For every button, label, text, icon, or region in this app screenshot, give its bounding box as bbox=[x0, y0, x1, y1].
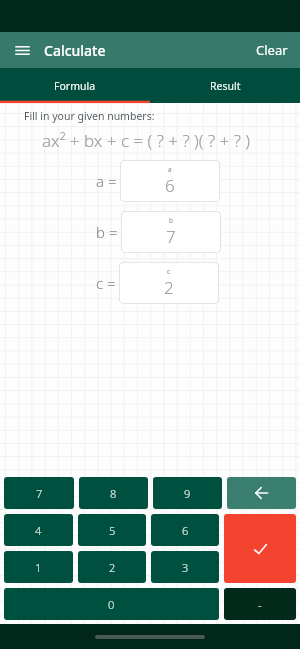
button[interactable]: 2 bbox=[78, 551, 146, 583]
button[interactable]: 3 bbox=[151, 551, 219, 583]
button[interactable]: 1 bbox=[4, 551, 73, 583]
button[interactable]: - bbox=[224, 588, 296, 620]
staticText: 9 bbox=[184, 486, 191, 501]
staticText: Result bbox=[210, 79, 241, 93]
staticText: b bbox=[169, 216, 173, 225]
staticText: - bbox=[258, 597, 262, 612]
button[interactable]: 0 bbox=[4, 588, 219, 620]
button[interactable]: Menu bbox=[12, 40, 32, 60]
staticText: a bbox=[168, 165, 172, 174]
staticText: 2 bbox=[164, 276, 174, 299]
staticText: Formula bbox=[54, 79, 96, 93]
staticText: 7 bbox=[166, 225, 176, 248]
button[interactable]: 4 bbox=[4, 514, 73, 546]
staticText: Clear bbox=[256, 41, 288, 59]
staticText: 5 bbox=[109, 523, 116, 538]
button[interactable]: a bbox=[120, 160, 220, 202]
staticText: c = bbox=[96, 273, 116, 293]
staticText: Calculate bbox=[44, 41, 106, 60]
button[interactable]: b bbox=[121, 211, 221, 253]
staticText: 6 bbox=[165, 174, 175, 197]
staticText: 7 bbox=[36, 486, 43, 501]
staticText: 0 bbox=[108, 597, 115, 612]
staticText: ax² + bx + c = ( ? + ? )( ? + ? ) bbox=[42, 129, 250, 152]
button[interactable]: Backspace bbox=[227, 477, 296, 509]
button[interactable]: 5 bbox=[78, 514, 146, 546]
staticText: b = bbox=[96, 222, 118, 242]
staticText: 2 bbox=[109, 560, 116, 575]
button[interactable]: c bbox=[119, 262, 219, 304]
button[interactable]: 8 bbox=[79, 477, 148, 509]
button[interactable]: Formula bbox=[0, 68, 150, 103]
button[interactable]: 7 bbox=[4, 477, 74, 509]
button[interactable]: Confirm bbox=[224, 514, 296, 583]
button[interactable]: 9 bbox=[153, 477, 222, 509]
staticText: c bbox=[167, 267, 171, 276]
staticText: 4 bbox=[35, 523, 42, 538]
staticText: 6 bbox=[182, 523, 189, 538]
button[interactable]: 6 bbox=[151, 514, 219, 546]
staticText: 3 bbox=[182, 560, 189, 575]
button[interactable]: Clear bbox=[250, 41, 288, 59]
staticText: a = bbox=[96, 171, 117, 191]
staticText: Fill in your given numbers: bbox=[24, 109, 155, 123]
staticText: 1 bbox=[35, 560, 42, 575]
staticText: 8 bbox=[110, 486, 117, 501]
button[interactable]: Result bbox=[150, 68, 300, 103]
